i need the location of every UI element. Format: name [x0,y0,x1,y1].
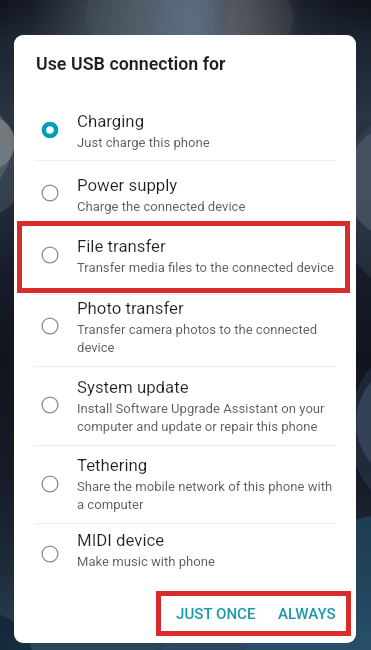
staticText: Tethering [77,455,148,475]
staticText: Power supply [77,175,178,195]
staticText: Transfer camera photos to the connected … [77,322,318,355]
staticText: JUST ONCE [176,605,256,623]
staticText: ALWAYS [278,605,336,623]
staticText: MIDI device [77,530,165,550]
staticText: Photo transfer [77,298,184,318]
button[interactable] [14,379,356,431]
staticText: Install Software Upgrade Assistant on yo… [77,401,325,434]
staticText: Charging [77,111,145,131]
button[interactable]: ALWAYS [267,595,347,633]
button[interactable] [14,229,356,281]
staticText: Transfer media files to the connected de… [77,260,334,275]
staticText: System update [77,377,189,397]
staticText: Charge the connected device [77,199,246,214]
staticText: Just charge this phone [77,135,210,150]
button[interactable] [14,167,356,219]
staticText: Share the mobile network of this phone w… [77,479,333,512]
button[interactable] [14,104,356,156]
button[interactable] [14,458,356,510]
button[interactable] [14,528,356,580]
staticText: Make music with phone [77,554,215,569]
staticText: Use USB connection for [36,53,226,74]
button[interactable] [14,300,356,352]
button[interactable]: JUST ONCE [165,595,267,633]
staticText: File transfer [77,236,166,256]
